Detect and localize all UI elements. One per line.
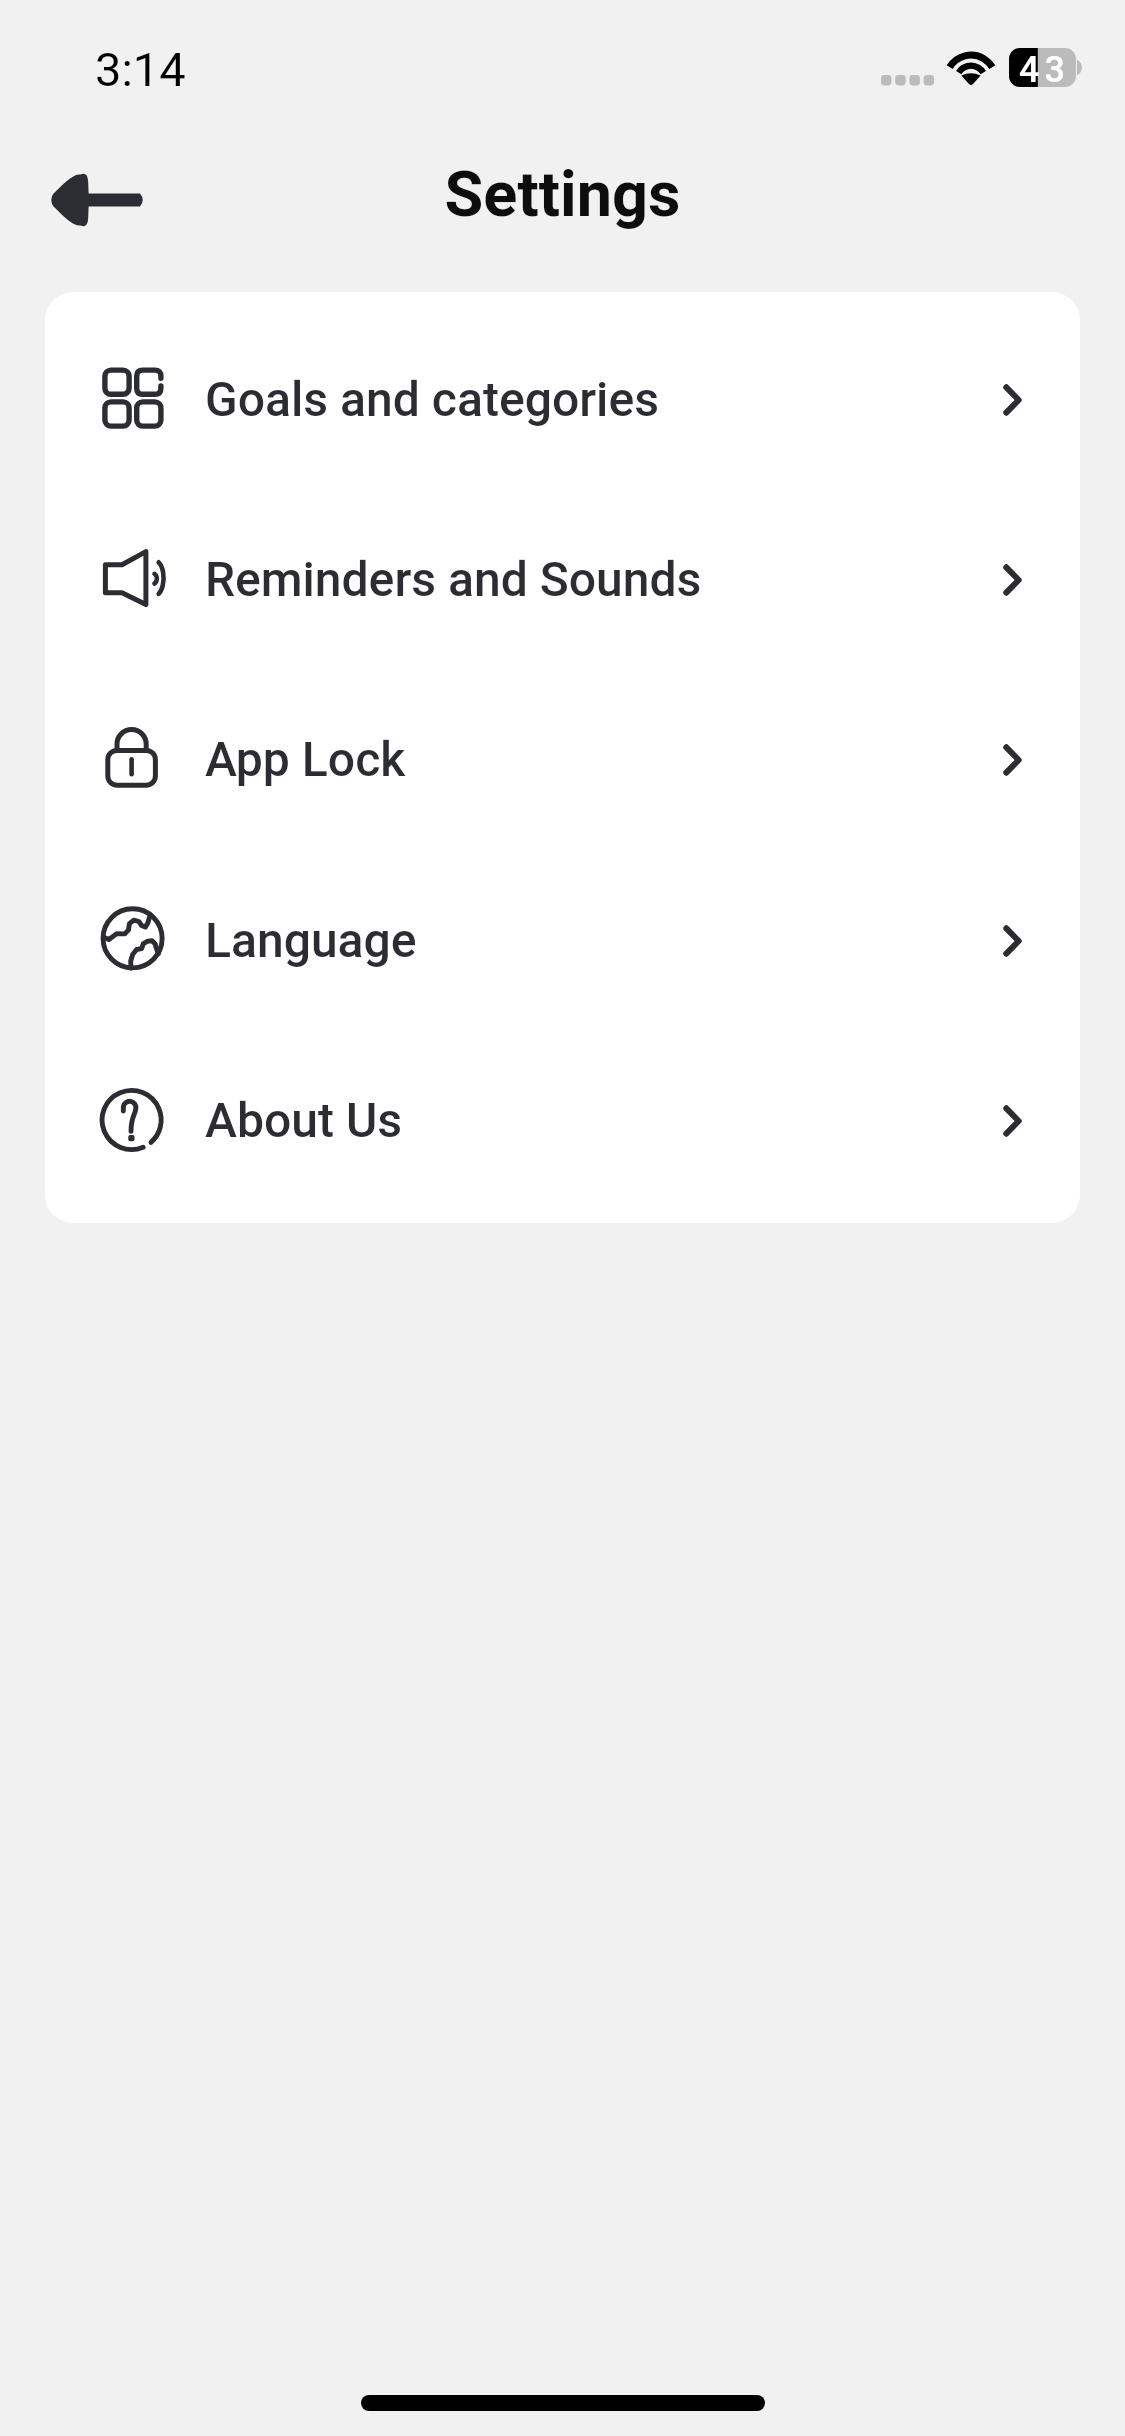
button[interactable]: Reminders and Sounds [45,489,1080,669]
staticText: 3:14 [95,42,186,97]
button[interactable]: Language [45,850,1080,1030]
staticText: About Us [205,1092,403,1148]
staticText: Settings [0,158,1125,232]
staticText: App Lock [205,731,406,787]
staticText: Reminders and Sounds [205,551,702,607]
staticText: Goals and categories [205,371,659,427]
button[interactable]: Back [30,155,162,245]
staticText: 43 [1011,49,1078,91]
button[interactable]: App Lock [45,669,1080,849]
button[interactable]: About Us [45,1030,1080,1210]
button[interactable]: Goals and categories [45,309,1080,489]
staticText: Language [205,912,417,968]
